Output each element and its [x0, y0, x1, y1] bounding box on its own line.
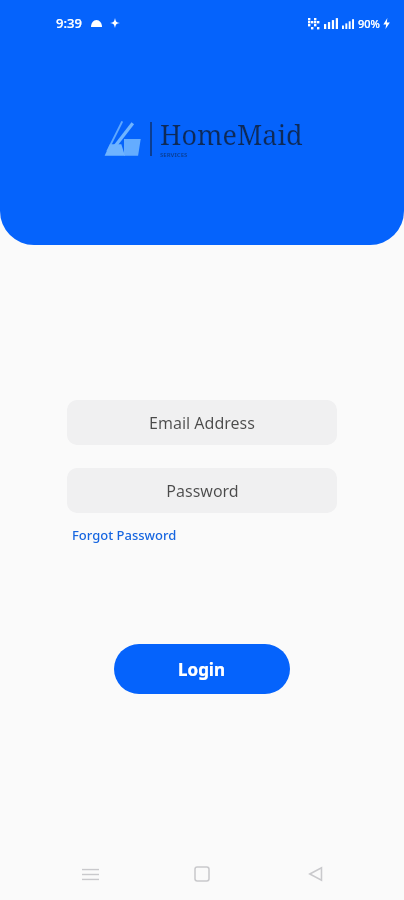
staticText: Password — [166, 480, 239, 502]
button[interactable]: Home — [179, 851, 225, 897]
button[interactable]: Recent apps — [67, 851, 113, 897]
staticText: SERVICES — [160, 151, 188, 159]
staticText: Login — [178, 658, 226, 681]
button[interactable]: Back — [292, 851, 338, 897]
button[interactable]: Password — [67, 468, 337, 513]
button[interactable]: Login — [114, 644, 290, 694]
staticText: HomeMaid — [160, 116, 303, 153]
staticText: 90% — [358, 16, 380, 31]
button[interactable]: Forgot Password — [67, 523, 182, 547]
staticText: 9:39 — [56, 14, 82, 32]
staticText: Forgot Password — [72, 526, 177, 544]
staticText: Email Address — [149, 412, 255, 434]
button[interactable]: Email Address — [67, 400, 337, 445]
